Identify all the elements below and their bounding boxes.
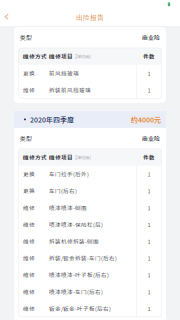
staticText: 前风挡玻璃 [49,69,79,77]
staticText: 类型 [20,33,32,42]
staticText: 维修 [23,304,35,312]
staticText: 钣金/钣金-叶子板(后右) [49,304,111,312]
staticText: 1 [147,271,150,279]
staticText: (2单位级) [74,154,90,160]
staticText: 件数 [143,52,155,60]
staticText: 1 [147,187,150,195]
staticText: 更换 [23,187,35,195]
staticText: 维修项目 [49,153,73,161]
staticText: 维修 [23,254,35,262]
staticText: 商业险 [142,33,160,42]
staticText: 维修 [23,288,35,296]
staticText: 类型 [20,134,32,143]
staticText: 1 [147,288,150,296]
staticText: 约4000元 [131,114,161,124]
staticText: 喷漆喷漆-保险杠(后) [49,220,103,228]
button[interactable]: 返回 [0,8,16,26]
staticText: 1 [147,220,150,228]
staticText: 车门(后右) [49,187,77,195]
staticText: 拆装/钣金拆装-车门(后右) [49,254,117,262]
staticText: 维修项目 [49,52,73,60]
staticText: 维修方式 [23,52,47,60]
staticText: 拆装前风挡玻璃 [49,86,91,94]
staticText: (2单位级) [74,53,90,59]
staticText: 维修方式 [23,153,47,161]
staticText: 维修 [23,237,35,245]
staticText: 维修 [23,220,35,228]
staticText: 2020年四季度 [30,114,74,124]
staticText: 拆装机修拆装-侧围 [49,237,99,245]
staticText: 出险报告 [76,12,104,22]
staticText: 喷漆喷漆-叶子板(后右) [49,271,109,279]
staticText: 1 [147,170,150,178]
staticText: 维修 [23,204,35,212]
staticText: 1 [147,204,150,212]
staticText: 喷漆喷漆-侧围 [49,204,87,212]
staticText: 1 [147,86,150,94]
staticText: 维修 [23,86,35,94]
staticText: 1 [147,254,150,262]
staticText: 喷漆喷漆-车门(后右) [49,288,103,296]
staticText: 1 [147,237,150,245]
staticText: 1 [147,69,150,77]
staticText: 维修 [23,271,35,279]
staticText: 件数 [143,153,155,161]
staticText: 更换 [23,69,35,77]
staticText: 商业险 [142,134,160,143]
staticText: 车门拉手(后外) [49,170,89,178]
staticText: 更换 [23,170,35,178]
staticText: 1 [147,304,150,312]
